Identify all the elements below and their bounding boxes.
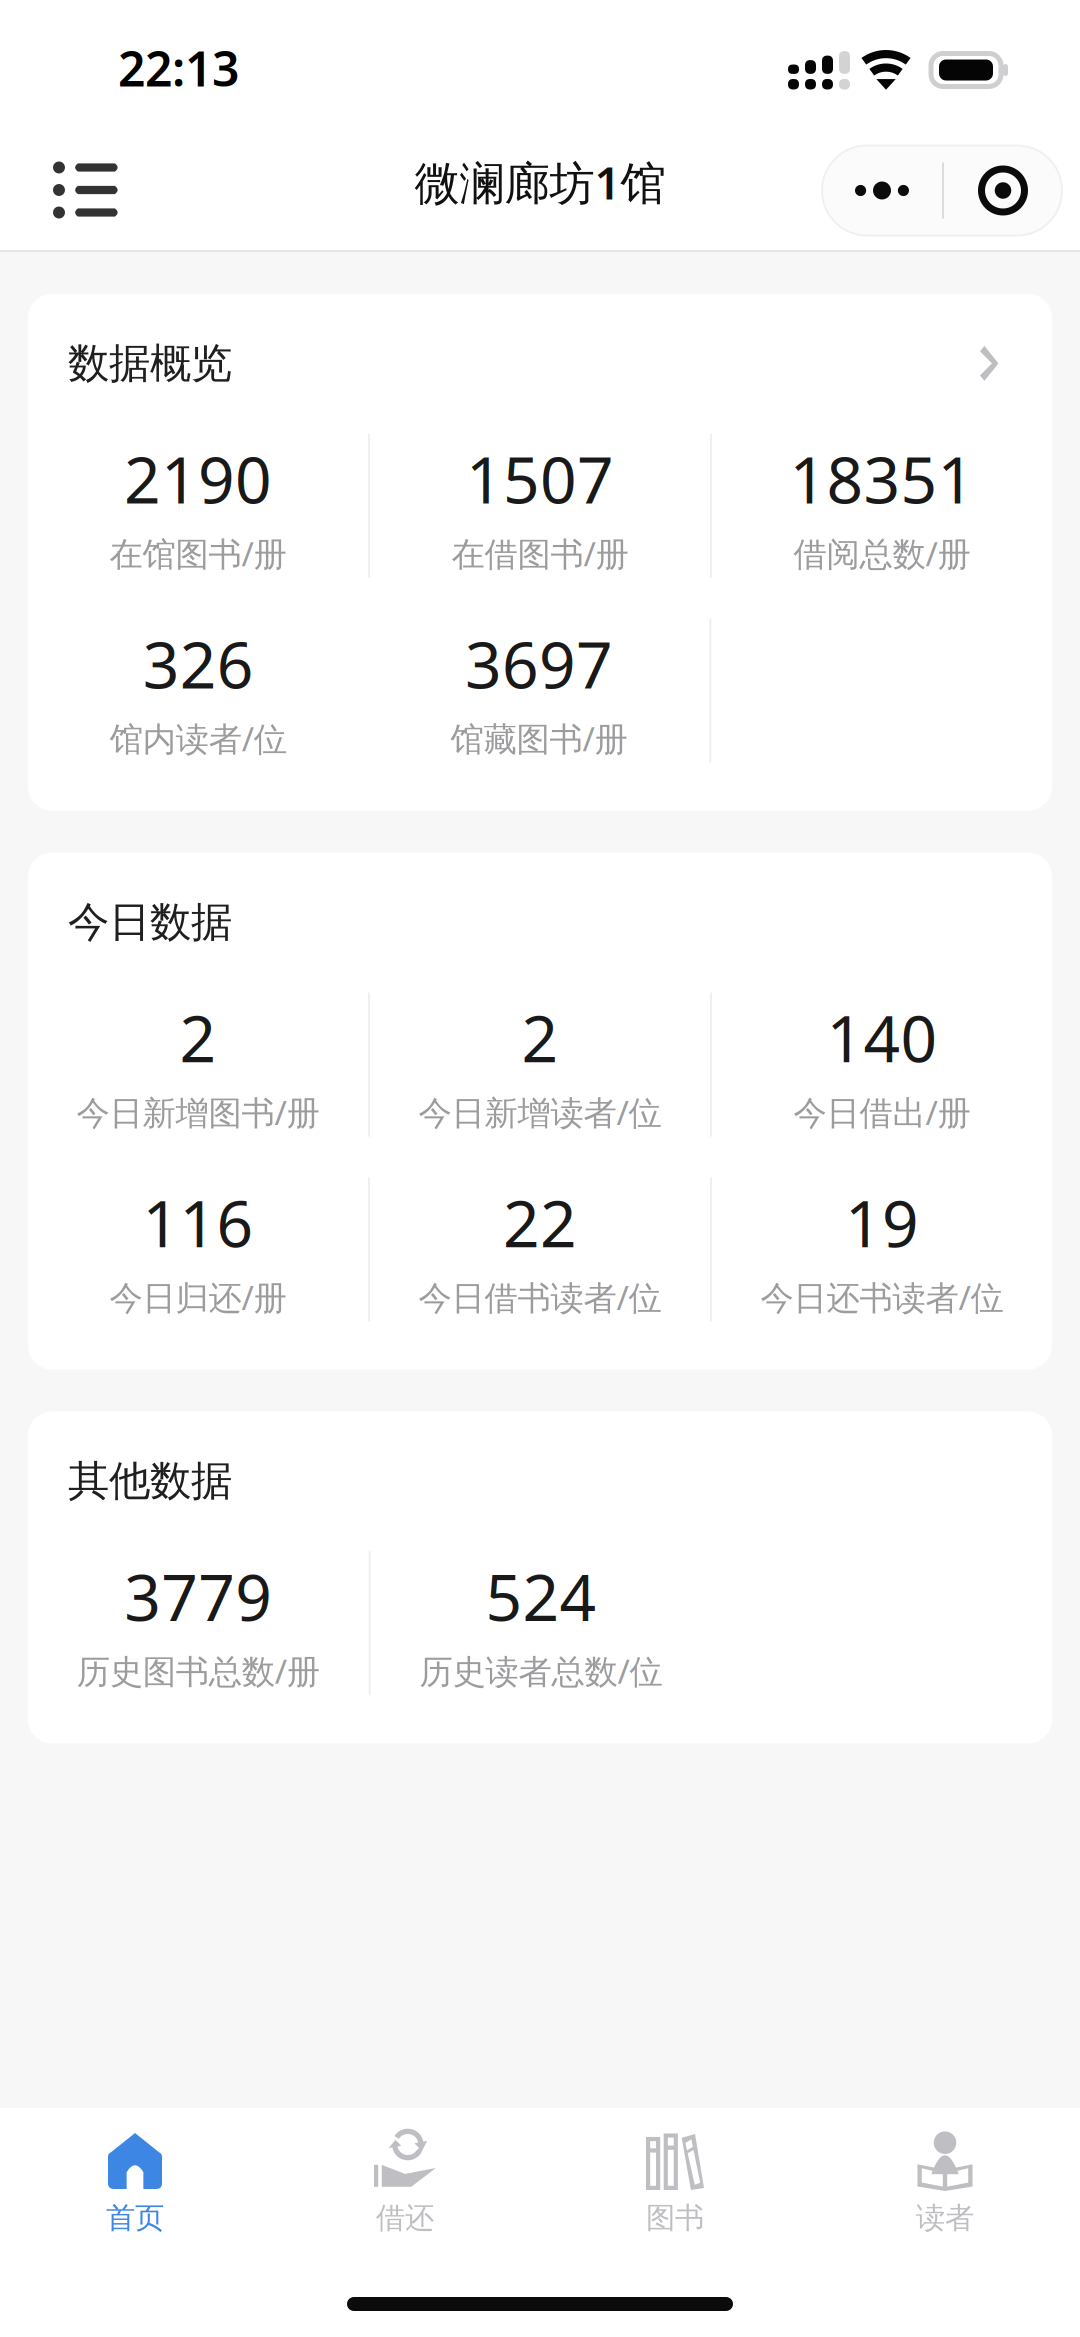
button[interactable]: 关闭: [944, 145, 1062, 235]
staticText: 2: [179, 995, 216, 1080]
staticText: 数据概览: [68, 338, 232, 389]
staticText: 馆藏图书/册: [450, 716, 627, 760]
staticText: 1507: [466, 436, 614, 521]
staticText: 今日新增读者/位: [418, 1090, 661, 1134]
staticText: 2190: [124, 436, 272, 521]
staticText: 今日借书读者/位: [418, 1275, 661, 1319]
staticText: 首页: [106, 2200, 164, 2236]
staticText: 读者: [916, 2200, 974, 2236]
staticText: 历史读者总数/位: [419, 1649, 662, 1693]
staticText: 18351: [789, 436, 974, 521]
button[interactable]: 首页: [0, 2130, 270, 2236]
staticText: 借还: [376, 2200, 434, 2236]
staticText: 22: [503, 1180, 577, 1265]
staticText: 326: [143, 621, 254, 706]
staticText: 116: [142, 1180, 253, 1265]
staticText: 3779: [124, 1554, 272, 1639]
staticText: 图书: [646, 2200, 704, 2236]
staticText: 140: [826, 995, 937, 1080]
staticText: 借阅总数/册: [793, 531, 970, 575]
staticText: 2: [521, 995, 558, 1080]
button[interactable]: 读者: [810, 2130, 1080, 2236]
staticText: 在借图书/册: [451, 531, 628, 575]
staticText: 今日数据: [68, 897, 232, 948]
button[interactable]: 借还: [270, 2130, 540, 2236]
staticText: 524: [485, 1554, 596, 1639]
staticText: 今日归还/册: [109, 1275, 286, 1319]
staticText: 今日还书读者/位: [760, 1275, 1003, 1319]
staticText: 今日借出/册: [793, 1090, 970, 1134]
button[interactable]: 图书: [540, 2130, 810, 2236]
staticText: 其他数据: [68, 1455, 232, 1506]
button[interactable]: 更多: [822, 145, 942, 235]
staticText: 历史图书总数/册: [77, 1649, 320, 1693]
staticText: 22:13: [118, 36, 239, 100]
button[interactable]: 菜单: [26, 122, 146, 250]
staticText: 在馆图书/册: [109, 531, 286, 575]
staticText: 微澜廊坊1馆: [414, 152, 665, 212]
staticText: 今日新增图书/册: [76, 1090, 319, 1134]
staticText: 3697: [465, 621, 613, 706]
staticText: 19: [845, 1180, 919, 1265]
staticText: 馆内读者/位: [110, 716, 287, 760]
